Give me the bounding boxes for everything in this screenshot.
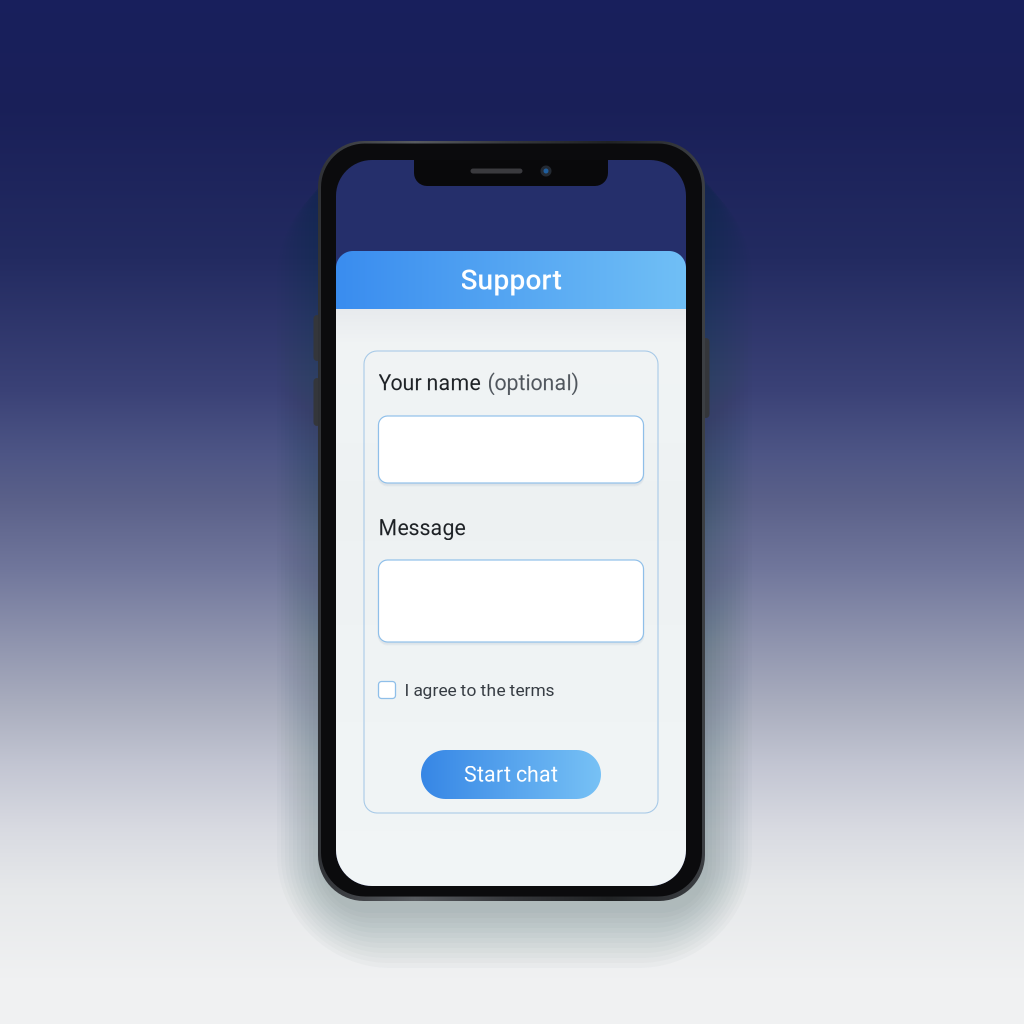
button[interactable]: I agree to the terms <box>378 678 643 702</box>
staticText: (optional) <box>487 370 578 395</box>
button[interactable]: Start chat <box>421 750 601 799</box>
staticText: Support <box>460 264 561 296</box>
staticText: Start chat <box>464 762 558 787</box>
button[interactable]: Support <box>336 251 686 309</box>
staticText: I agree to the terms <box>404 680 554 700</box>
staticText: Your name <box>378 370 480 395</box>
staticText: Message <box>378 515 465 540</box>
